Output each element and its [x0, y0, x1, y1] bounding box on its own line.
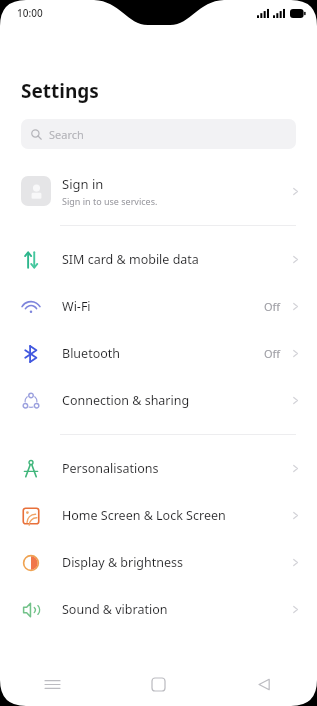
staticText: Personalisations [62, 460, 290, 477]
staticText: Search [49, 127, 84, 142]
button[interactable]: SIM card & mobile data [0, 236, 317, 283]
staticText: Bluetooth [62, 345, 264, 362]
staticText: Settings [21, 78, 99, 104]
button[interactable]: Recent apps [0, 662, 105, 706]
staticText: Home Screen & Lock Screen [62, 507, 290, 524]
button[interactable]: Back [211, 662, 317, 706]
button[interactable]: Sign in [0, 168, 317, 214]
staticText: Wi-Fi [62, 298, 264, 315]
staticText: SIM card & mobile data [62, 251, 290, 268]
staticText: Sound & vibration [62, 601, 290, 618]
button[interactable]: Sound & vibration [0, 586, 317, 633]
button[interactable]: Bluetooth [0, 330, 317, 377]
button[interactable]: Wi-Fi [0, 283, 317, 330]
button[interactable]: Search [21, 119, 296, 149]
staticText: Off [264, 299, 281, 314]
button[interactable]: Personalisations [0, 445, 317, 492]
button[interactable]: Home Screen & Lock Screen [0, 492, 317, 539]
staticText: Display & brightness [62, 554, 290, 571]
staticText: 10:00 [17, 6, 43, 20]
staticText: Off [264, 346, 281, 361]
staticText: Sign in [62, 175, 104, 193]
button[interactable]: Connection & sharing [0, 377, 317, 424]
staticText: Connection & sharing [62, 392, 290, 409]
button[interactable]: Display & brightness [0, 539, 317, 586]
button[interactable]: Home [105, 662, 211, 706]
staticText: Sign in to use services. [62, 195, 158, 207]
